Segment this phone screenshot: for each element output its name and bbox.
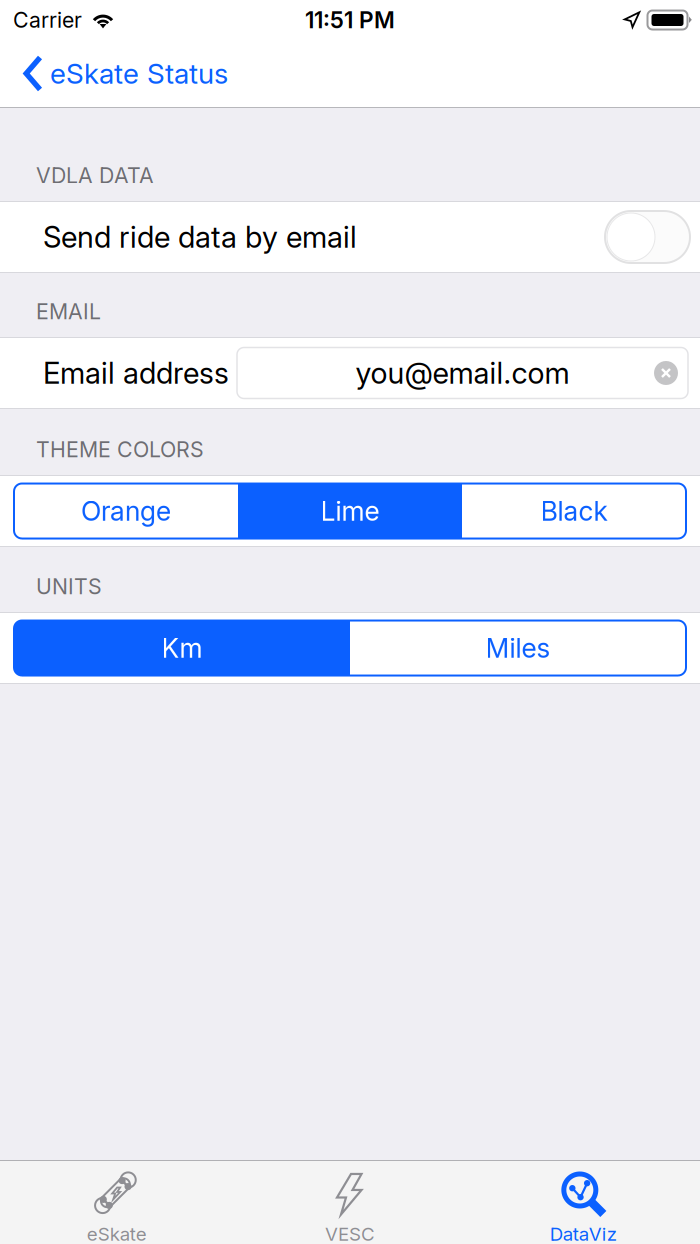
staticText: VDLA DATA: [36, 163, 154, 188]
staticText: Send ride data by email: [43, 220, 357, 254]
staticText: eSkate: [87, 1223, 147, 1244]
staticText: EMAIL: [36, 299, 101, 324]
staticText: Lime: [320, 495, 379, 527]
staticText: VESC: [325, 1223, 375, 1244]
button[interactable]: Orange: [14, 483, 238, 538]
staticText: DataViz: [550, 1223, 617, 1244]
button[interactable]: Km: [14, 620, 350, 675]
button[interactable]: eSkate: [0, 1161, 233, 1244]
staticText: Carrier: [13, 7, 82, 33]
staticText: UNITS: [36, 574, 102, 599]
staticText: Email address: [43, 356, 229, 390]
staticText: Km: [161, 632, 202, 664]
staticText: Black: [540, 495, 607, 527]
staticText: Miles: [485, 632, 550, 664]
staticText: Orange: [81, 495, 171, 527]
staticText: eSkate Status: [50, 57, 228, 90]
button[interactable]: Clear email address: [644, 348, 688, 398]
button[interactable]: DataViz: [467, 1161, 700, 1244]
button[interactable]: Black: [462, 483, 686, 538]
staticText: you@email.com: [355, 356, 569, 390]
button[interactable]: eSkate Status: [0, 40, 244, 107]
button[interactable]: Miles: [350, 620, 686, 675]
staticText: 11:51 PM: [305, 7, 395, 33]
button[interactable]: Send ride data by email: [0, 202, 700, 272]
staticText: THEME COLORS: [36, 437, 204, 462]
button[interactable]: VESC: [233, 1161, 467, 1244]
button[interactable]: Email address field: [237, 347, 688, 398]
button[interactable]: Lime: [238, 483, 462, 538]
